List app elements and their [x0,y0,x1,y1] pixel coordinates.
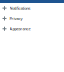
button[interactable]: Appearance [0,24,64,34]
button[interactable]: Notifications [0,3,64,13]
staticText: Privacy [9,16,22,21]
button[interactable]: Privacy [0,13,64,24]
staticText: Notifications [9,5,30,11]
staticText: Appearance [9,26,30,31]
